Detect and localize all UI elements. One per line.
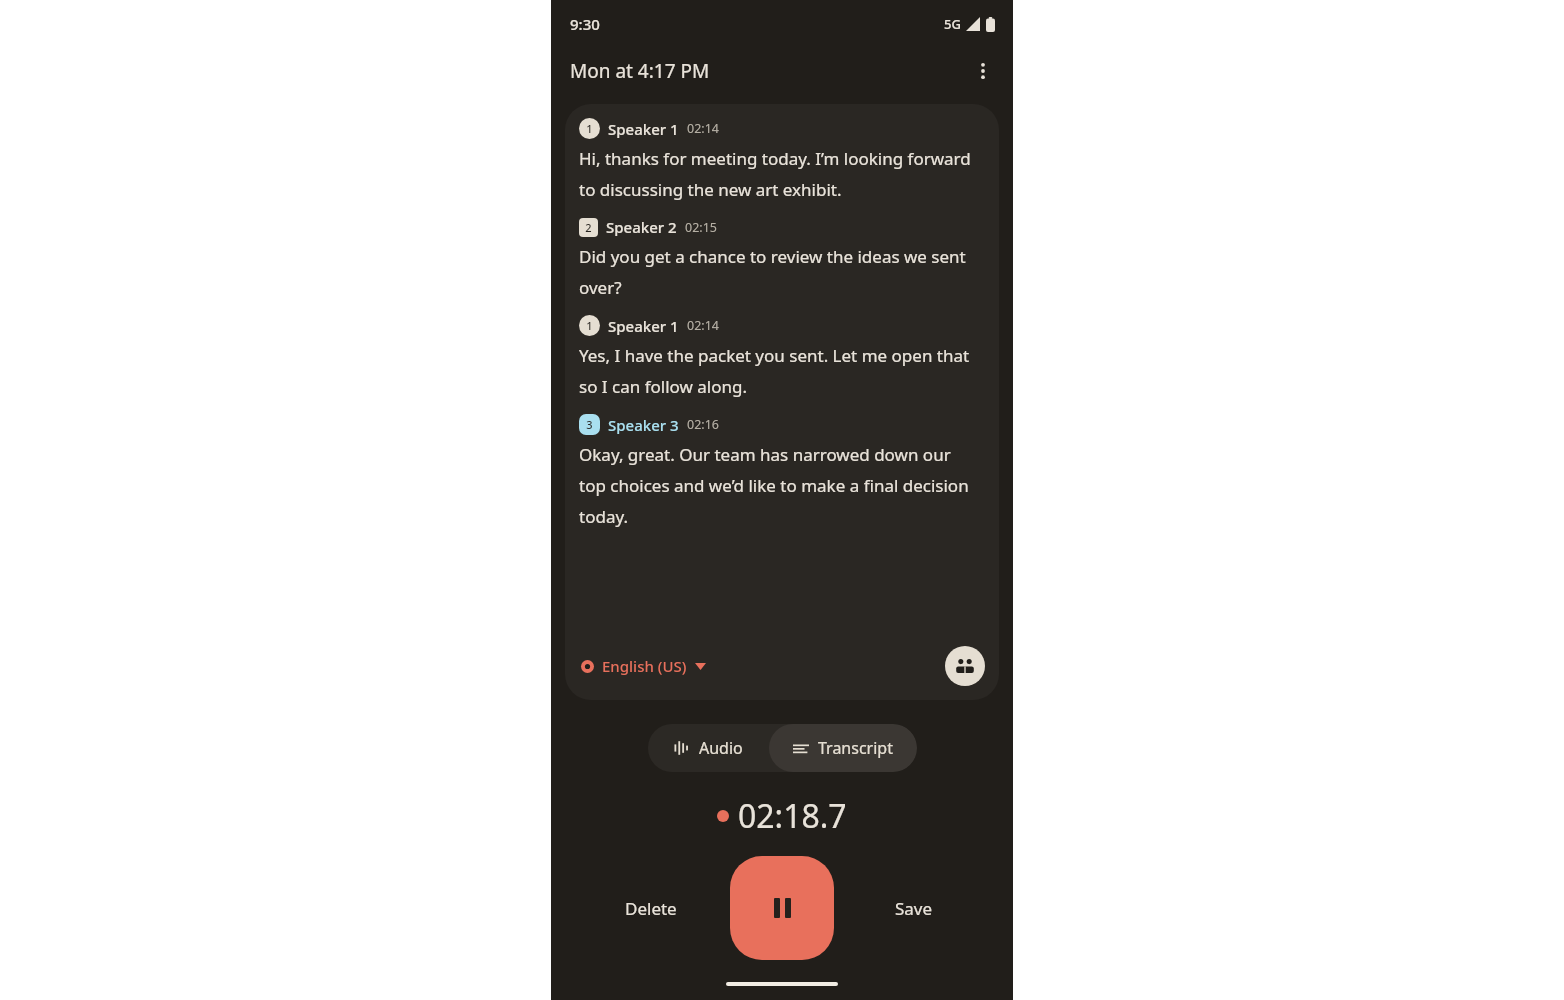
staticText: 02:15 [685, 219, 717, 236]
staticText: Delete [625, 897, 677, 920]
button[interactable]: Delete [571, 897, 730, 920]
button[interactable]: English (US) [579, 652, 708, 680]
button[interactable]: More options [965, 53, 1001, 89]
button[interactable]: 1 [565, 104, 999, 700]
button[interactable]: Audio [648, 724, 769, 772]
staticText: 02:14 [687, 317, 719, 334]
staticText: 1 [586, 121, 593, 136]
staticText: 02:14 [687, 120, 719, 137]
staticText: Speaker 1 [608, 316, 679, 336]
staticText: Okay, great. Our team has narrowed down … [579, 443, 981, 528]
staticText: Audio [699, 737, 743, 759]
button[interactable]: Speakers [945, 646, 985, 686]
staticText: 5G [944, 15, 961, 33]
staticText: Transcript [818, 737, 893, 759]
button[interactable]: Transcript [769, 724, 917, 772]
staticText: 02:16 [687, 416, 719, 433]
staticText: English (US) [602, 656, 687, 676]
staticText: Yes, I have the packet you sent. Let me … [579, 344, 981, 398]
staticText: 3 [586, 417, 593, 432]
staticText: 02:18.7 [738, 794, 847, 838]
staticText: Speaker 1 [608, 119, 679, 139]
staticText: Hi, thanks for meeting today. I’m lookin… [579, 147, 981, 201]
staticText: Save [895, 897, 933, 920]
staticText: Did you get a chance to review the ideas… [579, 245, 981, 299]
staticText: 1 [586, 318, 593, 333]
staticText: 2 [585, 220, 592, 235]
staticText: Mon at 4:17 PM [570, 58, 710, 84]
staticText: Speaker 3 [608, 415, 679, 435]
button[interactable]: Save [834, 897, 993, 920]
button[interactable]: Pause recording [730, 856, 834, 960]
staticText: Speaker 2 [606, 217, 677, 237]
staticText: 9:30 [570, 14, 600, 34]
